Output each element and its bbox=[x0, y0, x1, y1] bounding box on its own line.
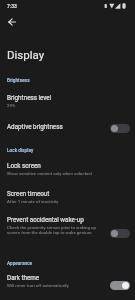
staticText: Screen timeout bbox=[7, 190, 50, 197]
staticText: Dark theme bbox=[7, 274, 40, 281]
staticText: Show sensitive content only when unlocke… bbox=[7, 171, 127, 176]
button[interactable]: Lock screen bbox=[0, 160, 135, 179]
staticText: Brightness bbox=[7, 78, 30, 84]
button[interactable]: Switch on bbox=[110, 281, 130, 290]
staticText: Appearance bbox=[7, 261, 33, 267]
button[interactable]: Dark theme bbox=[0, 272, 135, 291]
staticText: After 1 minute of inactivity bbox=[7, 199, 127, 204]
staticText: 7:33 bbox=[7, 3, 17, 9]
staticText: Will never turn off automatically bbox=[7, 283, 127, 288]
staticText: Adaptive brightness bbox=[7, 123, 63, 130]
staticText: Display bbox=[7, 48, 45, 61]
button[interactable]: Switch off bbox=[110, 229, 130, 238]
button[interactable]: Brightness level bbox=[0, 92, 135, 111]
staticText: Lock display bbox=[7, 148, 34, 154]
button[interactable]: Switch off bbox=[110, 124, 130, 133]
staticText: Brightness level bbox=[7, 94, 52, 101]
staticText: Prevent accidental wake-up bbox=[7, 216, 84, 223]
staticText: Check the proximity sensor prior to waki… bbox=[7, 225, 97, 235]
staticText: Lock screen bbox=[7, 162, 41, 169]
staticText: 29% bbox=[7, 103, 127, 108]
button[interactable]: Screen timeout bbox=[0, 188, 135, 207]
button[interactable]: Prevent accidental wake-up bbox=[0, 214, 135, 238]
button[interactable]: Adaptive brightness bbox=[0, 121, 135, 133]
button[interactable]: Navigate up bbox=[3, 13, 20, 30]
